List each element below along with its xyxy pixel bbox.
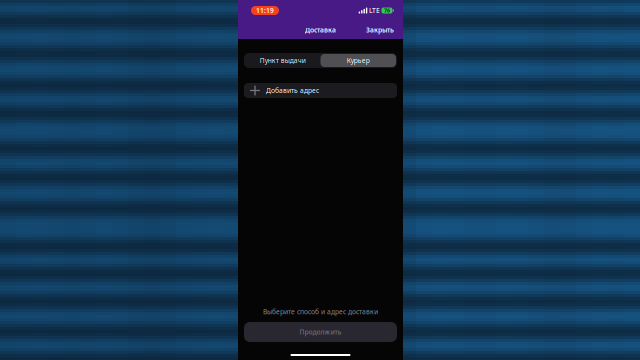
staticText: 11:19 <box>256 6 274 15</box>
button[interactable]: Курьер <box>320 54 396 67</box>
button[interactable]: Пункт выдачи <box>245 54 320 67</box>
staticText: Курьер <box>347 56 370 65</box>
staticText: LTE <box>369 6 380 15</box>
staticText: Добавить адрес <box>266 86 319 95</box>
staticText: Закрыть <box>366 26 394 34</box>
staticText: Продолжить <box>299 328 341 336</box>
staticText: 76 <box>384 7 390 14</box>
staticText: Выберите способ и адрес доставки <box>263 307 378 316</box>
button[interactable]: Добавить адрес <box>244 83 397 98</box>
staticText: Пункт выдачи <box>260 56 306 65</box>
staticText: Доставка <box>305 26 336 34</box>
button[interactable]: Закрыть <box>362 23 398 37</box>
button[interactable]: Продолжить <box>244 322 397 342</box>
